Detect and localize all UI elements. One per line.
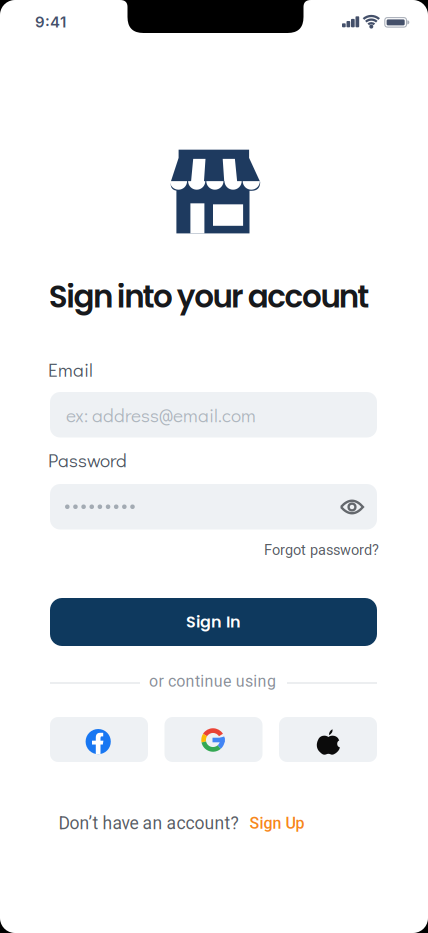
staticText: Sign In <box>186 611 241 633</box>
staticText: Don’t have an account? <box>58 813 238 833</box>
button[interactable]: Show password <box>334 491 370 523</box>
button[interactable]: Forgot password? <box>264 541 379 558</box>
staticText: Email <box>48 357 93 382</box>
button[interactable]: Continue with Google <box>164 717 262 762</box>
staticText: or continue using <box>149 672 276 691</box>
staticText: Sign Up <box>249 814 304 833</box>
staticText: ex: address@email.com <box>66 402 256 427</box>
staticText: 9:41 <box>35 13 66 31</box>
button[interactable]: Continue with Facebook <box>50 717 148 762</box>
button[interactable] <box>50 484 377 529</box>
button[interactable]: Sign In <box>50 598 377 646</box>
button[interactable]: ex: address@email.com <box>50 392 377 437</box>
staticText: Forgot password? <box>264 541 379 558</box>
staticText: Password <box>48 447 127 472</box>
button[interactable]: Sign Up <box>249 814 304 833</box>
staticText: Sign into your account <box>49 275 369 318</box>
button[interactable]: Continue with Apple <box>279 717 377 762</box>
